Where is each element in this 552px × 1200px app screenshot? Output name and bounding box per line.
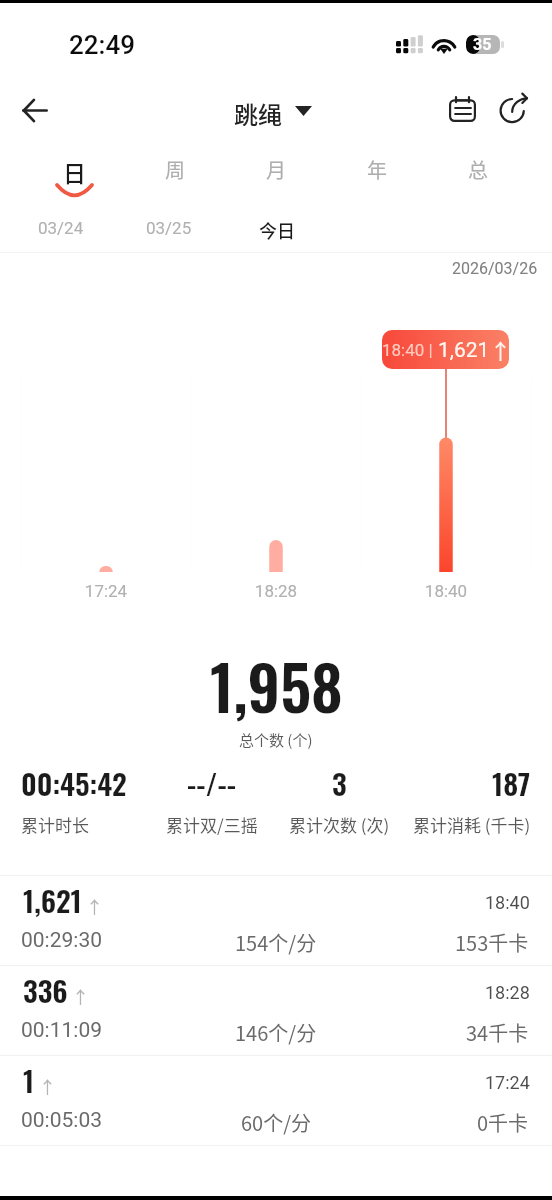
staticText: 17:24 bbox=[66, 581, 146, 601]
staticText: 34千卡 bbox=[466, 1018, 529, 1047]
staticText: ↑ bbox=[490, 335, 509, 365]
staticText: 17:24 bbox=[485, 1072, 530, 1093]
button[interactable]: Back bbox=[9, 84, 61, 136]
staticText: 60个/分 bbox=[241, 1108, 312, 1137]
staticText: 1,958 bbox=[210, 640, 343, 731]
button[interactable]: 跳绳 bbox=[234, 96, 312, 126]
staticText: 累计时长 bbox=[21, 812, 89, 837]
button[interactable]: Share bbox=[489, 84, 539, 134]
button[interactable]: 1 bbox=[0, 1056, 552, 1145]
staticText: 00:05:03 bbox=[21, 1108, 102, 1133]
staticText: 累计双/三摇 bbox=[166, 812, 258, 837]
staticText: 18:40 bbox=[406, 581, 486, 601]
staticText: 187 bbox=[492, 761, 531, 804]
staticText: 00:29:30 bbox=[21, 928, 102, 953]
other: Signal strength bbox=[396, 35, 422, 54]
staticText: ↑ bbox=[86, 894, 103, 919]
staticText: 今日 bbox=[259, 217, 295, 243]
staticText: ↑ bbox=[72, 984, 89, 1009]
staticText: 1 bbox=[23, 1058, 35, 1101]
button[interactable]: 月 bbox=[225, 148, 326, 206]
button[interactable]: 总 bbox=[427, 148, 528, 206]
staticText: 146个/分 bbox=[235, 1018, 317, 1047]
staticText: 154个/分 bbox=[235, 928, 317, 957]
staticText: 18:40 bbox=[485, 892, 530, 913]
staticText: 00:11:09 bbox=[21, 1018, 102, 1043]
staticText: 累计消耗 (千卡) bbox=[413, 812, 531, 837]
staticText: 03/25 bbox=[146, 218, 192, 238]
staticText: 2026/03/26 bbox=[452, 259, 538, 278]
staticText: 3 bbox=[332, 761, 347, 804]
button[interactable]: 年 bbox=[326, 148, 427, 206]
staticText: 336 bbox=[23, 968, 68, 1011]
button[interactable]: 1,621 bbox=[0, 876, 552, 965]
staticText: ↑ bbox=[39, 1074, 56, 1099]
other: Wi-Fi bbox=[432, 35, 456, 53]
staticText: 00:45:42 bbox=[21, 761, 127, 804]
staticText: 18:28 bbox=[485, 982, 530, 1003]
button[interactable]: 336 bbox=[0, 966, 552, 1055]
staticText: 总 bbox=[468, 155, 488, 184]
button[interactable]: 周 bbox=[124, 148, 225, 206]
staticText: 1,621 bbox=[438, 338, 490, 363]
staticText: 18:40 | bbox=[382, 340, 433, 360]
staticText: 年 bbox=[367, 155, 387, 184]
staticText: 35 bbox=[473, 35, 492, 54]
staticText: 03/24 bbox=[38, 218, 84, 238]
staticText: --/-- bbox=[187, 761, 237, 804]
staticText: 日 bbox=[63, 155, 86, 188]
staticText: 22:49 bbox=[69, 30, 135, 60]
staticText: 总个数 (个) bbox=[239, 729, 313, 751]
staticText: 周 bbox=[165, 155, 185, 184]
staticText: 153千卡 bbox=[455, 928, 529, 957]
button[interactable]: Records bbox=[437, 84, 487, 134]
staticText: 月 bbox=[266, 155, 286, 184]
other: Battery 35 percent bbox=[466, 35, 500, 54]
button[interactable]: 日 bbox=[24, 148, 124, 206]
staticText: 跳绳 bbox=[234, 96, 282, 126]
staticText: 18:28 bbox=[236, 581, 316, 601]
button[interactable]: 18:40 | bbox=[382, 330, 509, 369]
staticText: 0千卡 bbox=[477, 1108, 529, 1137]
staticText: 1,621 bbox=[23, 878, 82, 921]
staticText: 累计次数 (次) bbox=[289, 812, 390, 837]
